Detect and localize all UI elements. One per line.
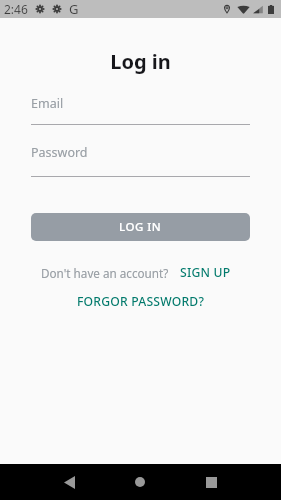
staticText: Log in	[110, 48, 171, 75]
staticText: LOG IN	[119, 219, 162, 235]
staticText: Email	[31, 95, 64, 112]
staticText: FORGOR PASSWORD?	[77, 293, 205, 310]
button[interactable]: Email	[31, 88, 250, 125]
button[interactable]: Back	[51, 464, 87, 500]
staticText: Password	[31, 144, 88, 161]
staticText: G	[69, 0, 79, 18]
button[interactable]: Password	[31, 137, 250, 177]
staticText: SIGN UP	[180, 264, 231, 281]
button[interactable]: Home	[122, 464, 158, 500]
staticText: 2:46	[4, 1, 28, 17]
staticText: Don't have an account?	[41, 265, 169, 281]
button[interactable]: FORGOR PASSWORD?	[69, 291, 213, 312]
button[interactable]: LOG IN	[31, 213, 250, 241]
button[interactable]: SIGN UP	[169, 261, 238, 284]
button[interactable]: Recent apps	[193, 464, 229, 500]
